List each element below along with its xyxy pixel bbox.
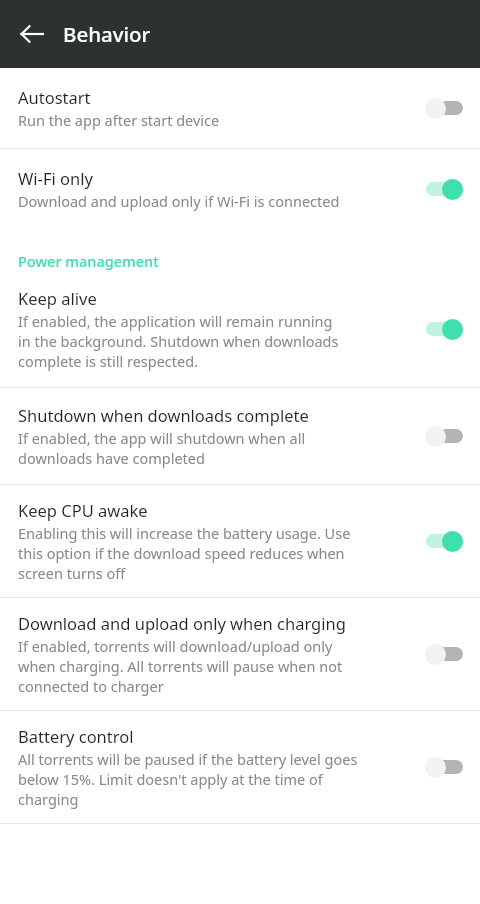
staticText: If enabled, the application will remain … <box>18 311 339 371</box>
button[interactable]: Autostart <box>0 68 480 148</box>
button[interactable]: Battery control <box>416 747 472 787</box>
staticText: Shutdown when downloads complete <box>18 404 309 426</box>
staticText: Power management <box>18 251 159 271</box>
staticText: Run the app after start device <box>18 110 220 130</box>
staticText: Enabling this will increase the battery … <box>18 523 351 583</box>
button[interactable]: Battery control <box>0 711 480 823</box>
staticText: Autostart <box>18 86 91 108</box>
button[interactable]: Keep alive <box>416 309 472 349</box>
staticText: Battery control <box>18 725 134 747</box>
button[interactable]: Shutdown when downloads complete <box>0 388 480 484</box>
staticText: Download and upload only if Wi-Fi is con… <box>18 191 340 211</box>
button[interactable]: Download and upload only when charging <box>0 598 480 710</box>
button[interactable]: Keep CPU awake <box>0 485 480 597</box>
button[interactable]: Back <box>8 10 56 58</box>
staticText: All torrents will be paused if the batte… <box>18 749 358 809</box>
staticText: Wi-Fi only <box>18 167 93 189</box>
button[interactable]: Shutdown when downloads complete <box>416 416 472 456</box>
button[interactable]: Download and upload only when charging <box>416 634 472 674</box>
staticText: Download and upload only when charging <box>18 612 346 634</box>
staticText: Keep alive <box>18 287 97 309</box>
button[interactable]: Keep CPU awake <box>416 521 472 561</box>
staticText: Keep CPU awake <box>18 499 148 521</box>
button[interactable]: Wi-Fi only <box>0 149 480 229</box>
staticText: If enabled, the app will shutdown when a… <box>18 428 306 468</box>
staticText: If enabled, torrents will download/uploa… <box>18 636 343 696</box>
button[interactable]: Keep alive <box>0 275 480 387</box>
button[interactable]: Wi-Fi only <box>416 169 472 209</box>
button[interactable]: Autostart <box>416 88 472 128</box>
staticText: Behavior <box>63 20 151 48</box>
